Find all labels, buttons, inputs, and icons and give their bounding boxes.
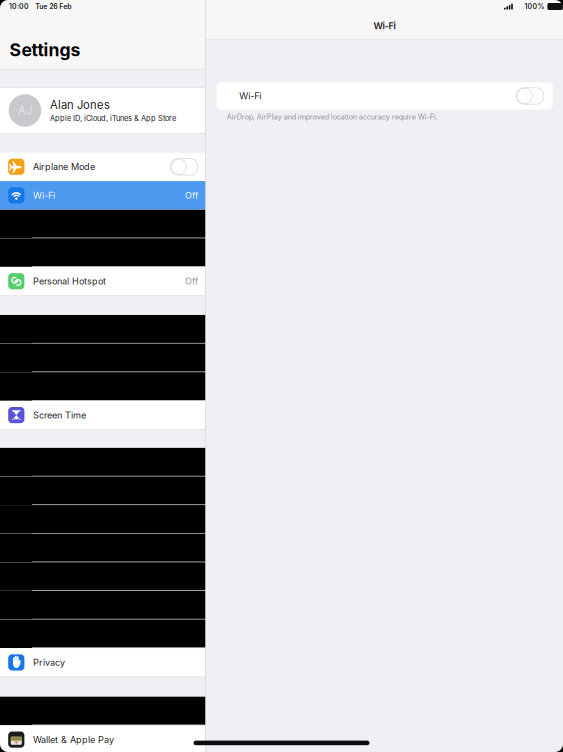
button[interactable]: Wallpaper	[0, 534, 206, 562]
button[interactable]: Personal Hotspot	[0, 267, 206, 295]
button[interactable]: General	[0, 448, 206, 476]
staticText: Personal Hotspot	[33, 276, 106, 287]
button[interactable]: Siri & Search	[0, 562, 206, 591]
staticText: Tue 26 Feb	[35, 2, 71, 11]
staticText: Settings	[9, 39, 80, 60]
button[interactable]: Wi-Fi	[217, 82, 553, 110]
staticText: Wi-Fi	[373, 20, 395, 31]
button[interactable]: Notifications	[0, 315, 206, 344]
button[interactable]: Face ID & Passcode	[0, 591, 206, 619]
staticText: Wi-Fi	[33, 190, 55, 201]
button[interactable]: Mobile Data	[0, 238, 206, 267]
staticText: Off	[185, 276, 198, 287]
button[interactable]: iTunes & App Store	[0, 697, 206, 725]
button[interactable]: Airplane Mode	[0, 152, 206, 181]
staticText: Apple ID, iCloud, iTunes & App Store	[50, 114, 176, 123]
staticText: Airplane Mode	[33, 161, 95, 172]
button[interactable]: Sounds	[0, 344, 206, 372]
staticText: AirDrop, AirPlay and improved location a…	[227, 112, 438, 121]
button[interactable]: Privacy	[0, 648, 206, 677]
staticText: 100%	[524, 2, 544, 11]
staticText: Privacy	[33, 657, 65, 668]
staticText: Wi-Fi	[239, 90, 261, 101]
button[interactable]: A	[0, 505, 206, 534]
staticText: 10:00	[9, 2, 29, 11]
button[interactable]: Control Centre	[0, 476, 206, 505]
staticText: Off	[185, 190, 198, 201]
staticText: Alan Jones	[50, 98, 110, 112]
staticText: Screen Time	[33, 410, 86, 421]
button[interactable]: Bluetooth	[0, 210, 206, 238]
button[interactable]: Do Not Disturb	[0, 372, 206, 401]
button[interactable]: Screen Time	[0, 401, 206, 429]
button[interactable]: Battery	[0, 619, 206, 648]
button[interactable]: AJ	[0, 88, 206, 133]
staticText: Wallet & Apple Pay	[33, 734, 114, 745]
button[interactable]: Wallet & Apple Pay	[0, 725, 206, 752]
button[interactable]: Wi-Fi	[0, 181, 206, 210]
staticText: AJ	[18, 104, 32, 117]
